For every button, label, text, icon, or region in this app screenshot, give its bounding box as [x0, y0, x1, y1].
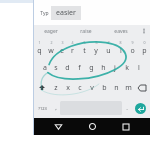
- staticText: l: [138, 63, 140, 73]
- button[interactable]: Back: [50, 118, 67, 135]
- staticText: 0: [143, 40, 146, 45]
- button[interactable]: m: [122, 78, 134, 98]
- staticText: 9: [131, 40, 134, 45]
- staticText: o: [130, 46, 135, 56]
- staticText: .: [126, 104, 128, 112]
- staticText: 6: [95, 40, 98, 45]
- button[interactable]: 8: [114, 37, 126, 58]
- button[interactable]: c: [74, 78, 86, 98]
- staticText: k: [125, 63, 129, 73]
- button[interactable]: .: [122, 98, 131, 118]
- button[interactable]: eaves: [103, 25, 138, 37]
- button[interactable]: 7: [102, 37, 114, 58]
- staticText: v: [90, 83, 94, 93]
- staticText: w: [48, 46, 54, 56]
- staticText: t: [83, 46, 86, 56]
- staticText: d: [65, 63, 70, 73]
- button[interactable]: More suggestions: [138, 25, 150, 37]
- staticText: 4: [71, 40, 74, 45]
- staticText: c: [78, 83, 82, 93]
- button[interactable]: ?123: [34, 98, 51, 118]
- staticText: r: [71, 46, 74, 56]
- staticText: e: [60, 46, 64, 56]
- staticText: i: [120, 46, 122, 56]
- button[interactable]: n: [110, 78, 122, 98]
- staticText: y: [94, 46, 98, 56]
- button[interactable]: Recent apps: [117, 118, 134, 135]
- button[interactable]: h: [97, 58, 109, 78]
- button[interactable]: v: [86, 78, 98, 98]
- button[interactable]: 2: [45, 37, 56, 58]
- staticText: 8: [119, 40, 122, 45]
- button[interactable]: b: [98, 78, 110, 98]
- staticText: z: [54, 83, 58, 93]
- button[interactable]: Enter: [135, 103, 146, 114]
- staticText: f: [78, 63, 81, 73]
- staticText: g: [89, 63, 94, 73]
- button[interactable]: 6: [90, 37, 102, 58]
- staticText: x: [66, 83, 70, 93]
- staticText: 1: [38, 40, 41, 45]
- staticText: raise: [80, 28, 92, 35]
- button[interactable]: 9: [126, 37, 138, 58]
- button[interactable]: x: [62, 78, 74, 98]
- staticText: 2: [50, 40, 53, 45]
- button[interactable]: d: [61, 58, 73, 78]
- button[interactable]: raise: [68, 25, 103, 37]
- staticText: eaves: [114, 28, 128, 35]
- button[interactable]: ,: [51, 98, 60, 118]
- button[interactable]: easier: [56, 8, 76, 18]
- staticText: 3: [61, 40, 64, 45]
- button[interactable]: 1: [34, 37, 45, 58]
- staticText: ,: [55, 104, 57, 112]
- staticText: m: [125, 83, 132, 93]
- staticText: ?123: [38, 106, 47, 111]
- staticText: p: [142, 46, 147, 56]
- staticText: Typ: [40, 10, 49, 17]
- button[interactable]: f: [73, 58, 85, 78]
- button[interactable]: Backspace: [134, 78, 150, 98]
- staticText: 7: [107, 40, 110, 45]
- button[interactable]: j: [109, 58, 121, 78]
- staticText: j: [114, 63, 116, 73]
- staticText: easier: [56, 8, 76, 18]
- button[interactable]: 3: [56, 37, 67, 58]
- button[interactable]: Home: [84, 118, 101, 135]
- button[interactable]: k: [121, 58, 133, 78]
- button[interactable]: l: [133, 58, 145, 78]
- button[interactable]: 5: [78, 37, 90, 58]
- button[interactable]: 4: [67, 37, 78, 58]
- button[interactable]: Shift: [34, 78, 50, 98]
- button[interactable]: z: [50, 78, 62, 98]
- button[interactable]: a: [39, 58, 50, 78]
- staticText: h: [101, 63, 106, 73]
- staticText: u: [106, 46, 111, 56]
- staticText: eager: [44, 28, 58, 35]
- button[interactable]: s: [50, 58, 61, 78]
- staticText: a: [43, 63, 47, 73]
- staticText: b: [102, 83, 107, 93]
- button[interactable]: eager: [34, 25, 68, 37]
- staticText: s: [54, 63, 58, 73]
- staticText: q: [37, 46, 42, 56]
- staticText: 5: [83, 40, 86, 45]
- button[interactable]: 0: [138, 37, 150, 58]
- button[interactable]: g: [85, 58, 97, 78]
- staticText: n: [114, 83, 119, 93]
